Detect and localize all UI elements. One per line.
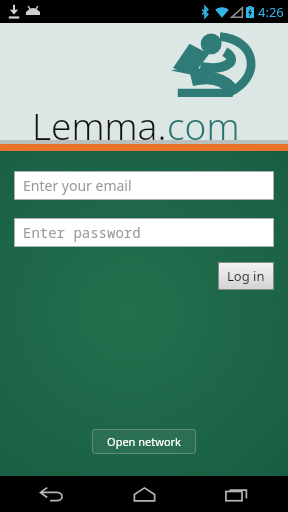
button[interactable]: Back	[12, 476, 92, 512]
button[interactable]: Log in	[218, 262, 274, 290]
staticText: Open network	[107, 434, 181, 449]
button[interactable]: Recent apps	[196, 476, 276, 512]
staticText: Enter your email	[23, 176, 132, 195]
staticText: com	[167, 100, 240, 150]
staticText: 4:26	[258, 3, 284, 21]
staticText: Lemma.	[32, 100, 167, 150]
button[interactable]: Home	[104, 476, 184, 512]
button[interactable]: Enter password	[14, 218, 274, 247]
staticText: Log in	[227, 267, 265, 285]
staticText: Enter password	[23, 223, 141, 242]
button[interactable]: Enter your email	[14, 171, 274, 200]
button[interactable]: Open network	[92, 429, 196, 454]
